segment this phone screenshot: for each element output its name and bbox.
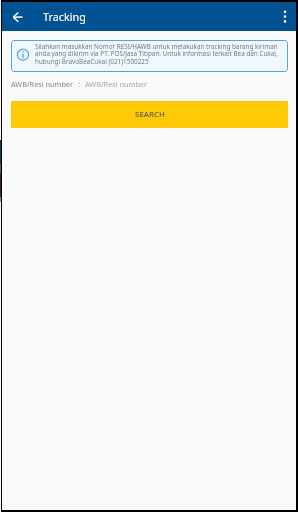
button[interactable]: More options — [274, 6, 296, 28]
staticText: AWB/Resi number — [85, 79, 148, 89]
staticText: Silahkan masukkan Nomor RESI/HAWB untuk … — [35, 42, 278, 66]
button[interactable]: AWB/Resi number — [11, 79, 288, 89]
staticText: AWB/Resi number — [11, 79, 74, 89]
button[interactable]: SEARCH — [11, 101, 288, 128]
button[interactable]: Back — [6, 7, 26, 27]
staticText: Tracking — [43, 9, 86, 24]
staticText: SEARCH — [135, 109, 165, 120]
staticText: : — [78, 79, 80, 89]
